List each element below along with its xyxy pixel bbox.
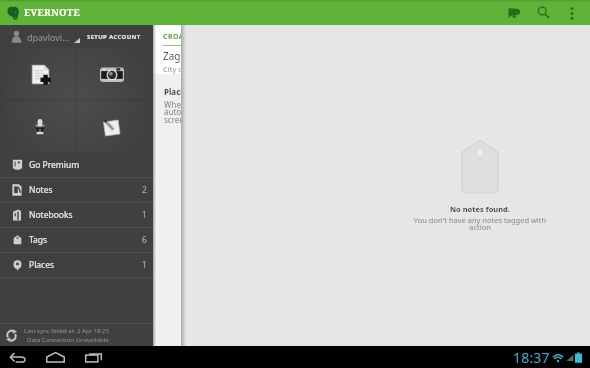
staticText: SETUP ACCOUNT xyxy=(87,33,141,41)
staticText: Zagreb xyxy=(163,49,181,63)
staticText: Last sync failed at: 2 Apr 18:25 xyxy=(24,327,109,335)
button[interactable]: Recent apps xyxy=(77,346,110,368)
button[interactable]: dpavlovi... xyxy=(0,25,153,48)
button[interactable]: Handwriting note xyxy=(76,101,147,153)
staticText: CROATIA xyxy=(163,32,181,42)
button[interactable]: Sync status xyxy=(0,324,153,346)
button[interactable]: Announcements xyxy=(501,0,527,25)
staticText: 1 xyxy=(142,259,147,271)
staticText: Places xyxy=(29,259,55,271)
staticText: EVERNOTE xyxy=(24,6,80,19)
staticText: Go Premium xyxy=(29,159,80,171)
staticText: When l autom screen xyxy=(164,99,181,126)
button[interactable]: CROATIA xyxy=(0,25,181,74)
button[interactable]: Audio note xyxy=(5,101,75,153)
button[interactable]: Tags xyxy=(0,228,153,252)
staticText: Tags xyxy=(29,234,48,246)
staticText: 18:37 xyxy=(513,348,550,367)
button[interactable]: EVERNOTE xyxy=(0,0,86,25)
staticText: Data Connection Unavailable xyxy=(27,336,109,344)
button[interactable]: Go Premium xyxy=(0,153,153,177)
staticText: Notes xyxy=(29,184,53,196)
button[interactable]: Places xyxy=(0,253,153,277)
staticText: City of Zagreb xyxy=(163,64,181,74)
staticText: 6 xyxy=(142,234,147,246)
button[interactable]: Search xyxy=(530,0,556,25)
button[interactable]: More options xyxy=(560,1,584,25)
button[interactable]: New note xyxy=(5,48,75,100)
staticText: Places xyxy=(164,86,181,97)
staticText: You don't have any notes tagged with act… xyxy=(410,215,550,233)
button[interactable]: Notebooks xyxy=(0,203,153,227)
staticText: dpavlovi... xyxy=(27,31,70,43)
button[interactable]: Camera note xyxy=(76,48,147,100)
staticText: No notes found. xyxy=(450,204,510,214)
staticText: 1 xyxy=(142,209,147,221)
button[interactable]: Home xyxy=(39,346,72,368)
button[interactable]: Notes xyxy=(0,178,153,202)
button[interactable]: Places xyxy=(0,86,181,126)
staticText: 2 xyxy=(142,184,147,196)
button[interactable]: Back xyxy=(1,346,34,368)
staticText: Notebooks xyxy=(29,209,73,221)
